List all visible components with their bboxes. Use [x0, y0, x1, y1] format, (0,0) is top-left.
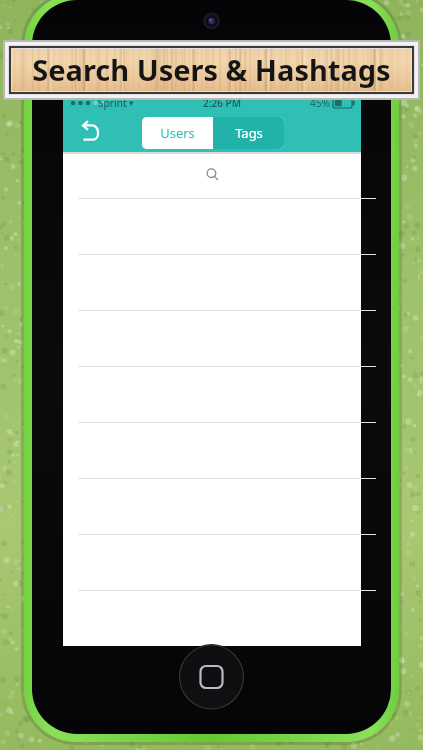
button[interactable]: Users — [142, 117, 213, 149]
staticText: 45% — [310, 96, 330, 110]
button[interactable] — [63, 590, 361, 646]
staticText: Tags — [235, 124, 263, 142]
button[interactable] — [63, 366, 361, 422]
button[interactable]: Tags — [213, 117, 284, 149]
button[interactable] — [63, 198, 361, 254]
button[interactable] — [63, 478, 361, 534]
button[interactable]: Back — [71, 114, 109, 152]
staticText: Sprint — [98, 96, 127, 110]
button[interactable] — [63, 422, 361, 478]
staticText: Search Users & Hashtags — [32, 50, 391, 89]
button[interactable] — [63, 254, 361, 310]
button[interactable]: Search — [63, 154, 361, 198]
button[interactable] — [63, 534, 361, 590]
staticText: ▾ — [129, 98, 134, 108]
staticText: 2:26 PM — [203, 96, 241, 110]
staticText: Users — [160, 124, 195, 142]
button[interactable] — [63, 310, 361, 366]
